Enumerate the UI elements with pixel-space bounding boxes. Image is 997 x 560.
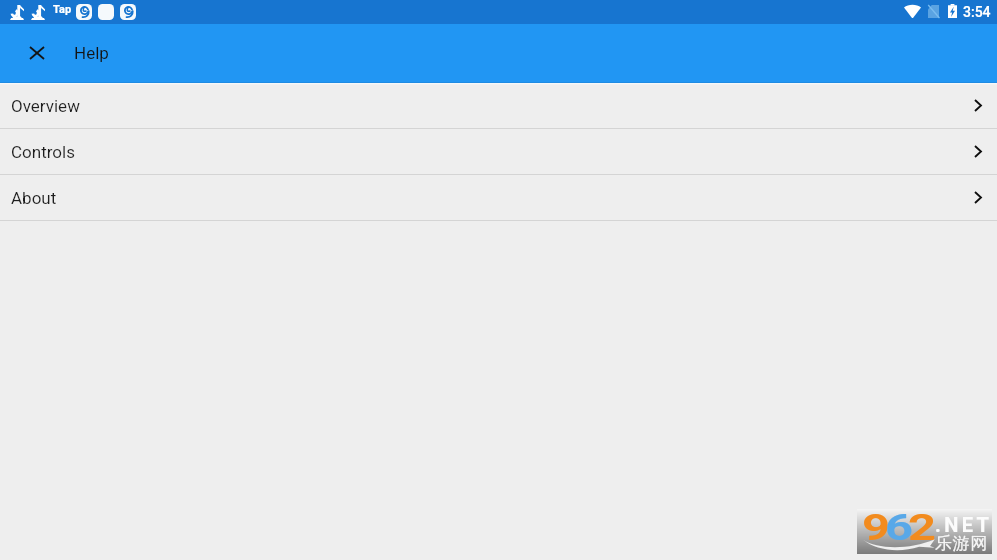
button[interactable]: Close bbox=[0, 24, 60, 83]
staticText: .NET bbox=[935, 513, 993, 536]
staticText: 9 bbox=[862, 506, 891, 549]
staticText: About bbox=[11, 188, 57, 208]
staticText: Controls bbox=[11, 142, 75, 162]
staticText: 2 bbox=[908, 506, 937, 549]
staticText: 6 bbox=[885, 506, 914, 549]
staticText: Overview bbox=[11, 96, 80, 116]
button[interactable]: Controls bbox=[0, 129, 997, 174]
staticText: 乐游网 bbox=[935, 533, 988, 554]
staticText: Tap bbox=[53, 3, 72, 16]
button[interactable]: Overview bbox=[0, 83, 997, 128]
button[interactable]: About bbox=[0, 175, 997, 220]
staticText: 3:54 bbox=[963, 4, 991, 20]
staticText: Help bbox=[74, 43, 109, 63]
